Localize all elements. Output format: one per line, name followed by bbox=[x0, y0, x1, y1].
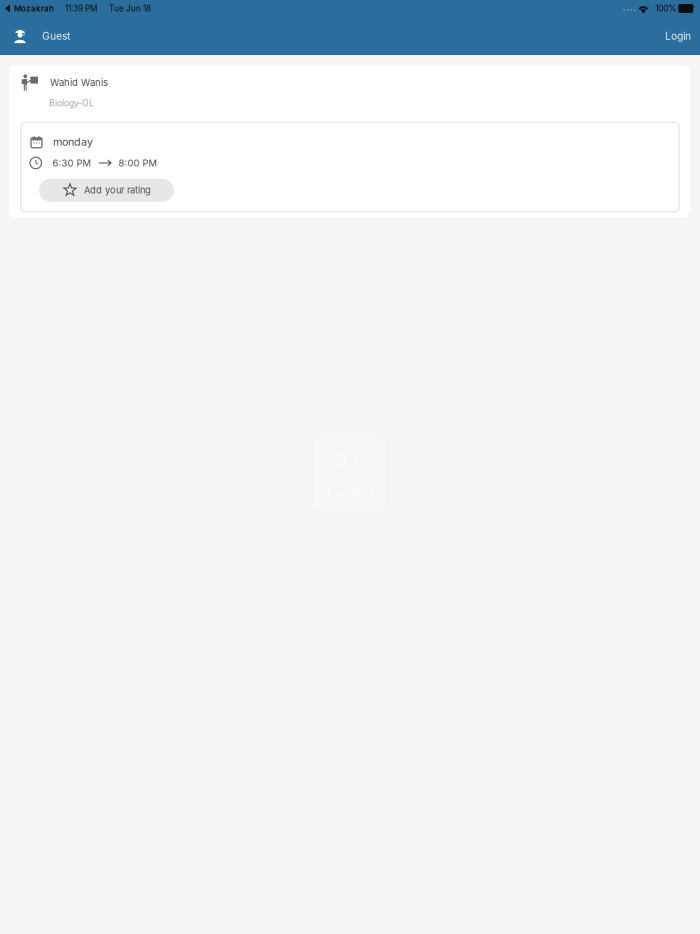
staticText: 6:30 PM bbox=[52, 157, 90, 169]
staticText: 100% bbox=[655, 3, 676, 14]
staticText: 8:00 PM bbox=[118, 157, 156, 169]
staticText: Mozakrah bbox=[14, 4, 54, 13]
staticText: Add your rating bbox=[84, 185, 151, 196]
button[interactable]: Add your rating bbox=[39, 179, 174, 202]
staticText: 11:39 PM bbox=[65, 3, 97, 13]
staticText: Login bbox=[665, 30, 691, 42]
staticText: Biology-OL bbox=[49, 98, 94, 108]
staticText: monday bbox=[53, 135, 93, 148]
staticText: Guest bbox=[42, 30, 70, 42]
staticText: Wahid Wanis bbox=[50, 77, 108, 88]
button[interactable]: Login bbox=[651, 17, 700, 55]
staticText: Tue Jun 18 bbox=[109, 3, 151, 13]
button[interactable]: Wahid Wanis bbox=[9, 65, 690, 218]
button[interactable]: Guest bbox=[0, 17, 82, 55]
